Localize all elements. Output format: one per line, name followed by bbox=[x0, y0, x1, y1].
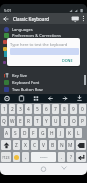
button[interactable]: Two Button Row bbox=[4, 86, 43, 92]
button[interactable]: DONE bbox=[62, 58, 73, 63]
staticText: Classic Keyboard bbox=[13, 16, 50, 22]
staticText: B bbox=[51, 142, 55, 149]
button[interactable]: 9 bbox=[70, 104, 77, 114]
button[interactable]: W bbox=[9, 116, 15, 126]
staticText: , bbox=[25, 154, 27, 160]
button[interactable]: A bbox=[4, 128, 10, 138]
button[interactable]: 7 bbox=[52, 104, 59, 114]
staticText: M bbox=[68, 142, 73, 149]
button[interactable]: 1 bbox=[1, 104, 7, 114]
staticText: G bbox=[41, 130, 45, 137]
button[interactable]: Preferences & Corrections bbox=[4, 32, 61, 38]
button[interactable]: 3 bbox=[17, 104, 23, 114]
button[interactable] bbox=[36, 163, 51, 175]
button[interactable] bbox=[76, 140, 86, 150]
staticText: Key Size bbox=[12, 73, 28, 78]
staticText: S bbox=[14, 130, 17, 137]
staticText: ?123 bbox=[2, 155, 10, 160]
staticText: Q bbox=[2, 118, 6, 125]
button[interactable] bbox=[82, 15, 85, 22]
staticText: 4 bbox=[27, 106, 30, 113]
button[interactable]: J bbox=[57, 128, 64, 138]
staticText: P bbox=[81, 118, 84, 125]
button[interactable]: Q bbox=[1, 116, 7, 126]
button[interactable] bbox=[13, 152, 20, 162]
button[interactable]: H bbox=[48, 128, 55, 138]
button[interactable]: K bbox=[66, 128, 73, 138]
staticText: R bbox=[27, 118, 30, 125]
button[interactable]: ?123 bbox=[1, 152, 11, 162]
staticText: 8 bbox=[63, 106, 66, 113]
button[interactable]: M bbox=[67, 140, 74, 150]
button[interactable]: 0 bbox=[79, 104, 86, 114]
button[interactable]: D bbox=[21, 128, 28, 138]
staticText: Type here to test the keyboard bbox=[10, 42, 68, 47]
staticText: Languages bbox=[12, 27, 33, 32]
button[interactable]: 6 bbox=[43, 104, 50, 114]
staticText: DONE bbox=[62, 58, 73, 63]
staticText: J bbox=[60, 130, 62, 137]
button[interactable]: O bbox=[70, 116, 77, 126]
staticText: A bbox=[5, 130, 9, 137]
button[interactable]: X bbox=[22, 140, 29, 150]
button[interactable]: F bbox=[30, 128, 37, 138]
button[interactable]: 4 bbox=[25, 104, 32, 114]
staticText: English bbox=[40, 156, 48, 159]
button[interactable] bbox=[3, 16, 9, 22]
staticText: Z bbox=[15, 142, 18, 149]
staticText: Keyboard Font bbox=[12, 80, 40, 85]
staticText: T bbox=[36, 118, 39, 125]
button[interactable]: Z bbox=[13, 140, 20, 150]
button[interactable]: Key Size bbox=[4, 72, 28, 78]
button[interactable]: T bbox=[34, 116, 41, 126]
button[interactable] bbox=[76, 152, 86, 162]
button[interactable]: B bbox=[49, 140, 56, 150]
button[interactable] bbox=[71, 15, 80, 23]
staticText: W bbox=[10, 118, 15, 125]
staticText: Preferences & Corrections bbox=[12, 33, 61, 38]
button[interactable] bbox=[1, 140, 11, 150]
button[interactable]: C bbox=[31, 140, 38, 150]
staticText: I bbox=[64, 118, 66, 125]
staticText: 9 bbox=[72, 106, 75, 113]
button[interactable]: 8 bbox=[61, 104, 68, 114]
button[interactable]: U bbox=[52, 116, 59, 126]
button[interactable]: P bbox=[79, 116, 86, 126]
button[interactable]: . bbox=[58, 152, 65, 162]
staticText: V bbox=[42, 142, 45, 149]
button[interactable]: , bbox=[22, 152, 29, 162]
button[interactable]: 2 bbox=[9, 104, 15, 114]
staticText: 5:01 bbox=[4, 8, 12, 13]
button[interactable]: S bbox=[12, 128, 19, 138]
staticText: C bbox=[33, 142, 37, 149]
button[interactable]: Languages bbox=[4, 26, 33, 32]
button[interactable]: R bbox=[25, 116, 32, 126]
staticText: E bbox=[19, 118, 22, 125]
button[interactable]: Y bbox=[43, 116, 50, 126]
staticText: L bbox=[77, 130, 80, 137]
staticText: F bbox=[32, 130, 35, 137]
button[interactable]: 5 bbox=[34, 104, 41, 114]
button[interactable]: G bbox=[39, 128, 46, 138]
staticText: U bbox=[54, 118, 58, 125]
button[interactable]: Keyboard Font bbox=[4, 79, 40, 85]
staticText: 3 bbox=[19, 106, 22, 113]
button[interactable]: N bbox=[58, 140, 65, 150]
button[interactable]: L bbox=[75, 128, 82, 138]
staticText: ? bbox=[70, 154, 72, 160]
staticText: . bbox=[61, 154, 63, 160]
staticText: H bbox=[50, 130, 54, 137]
button[interactable]: V bbox=[40, 140, 47, 150]
staticText: N bbox=[60, 142, 64, 149]
button[interactable]: English bbox=[31, 152, 56, 162]
button[interactable]: ? bbox=[67, 152, 74, 162]
button[interactable]: I bbox=[61, 116, 68, 126]
staticText: Y bbox=[45, 118, 48, 125]
staticText: D bbox=[23, 130, 27, 137]
button[interactable]: E bbox=[17, 116, 23, 126]
button[interactable] bbox=[0, 94, 87, 103]
staticText: 7 bbox=[54, 106, 57, 113]
staticText: Two Button Row bbox=[12, 87, 43, 92]
staticText: X bbox=[24, 142, 27, 149]
staticText: 2 bbox=[11, 106, 14, 113]
